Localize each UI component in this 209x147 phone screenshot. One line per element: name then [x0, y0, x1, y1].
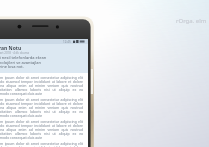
staticText: 12:45 [63, 40, 71, 44]
staticText: üzerine kısa not. [0, 64, 24, 69]
staticText: Ekran Notu [0, 45, 22, 52]
staticText: rOrga. elm [176, 17, 207, 25]
staticText: Yeni nesil telefonlarda ekran [0, 55, 47, 60]
staticText: 15 Mart 2018 · 4 dk okuma [0, 51, 30, 55]
staticText: Lorem ipsum dolor sit amet consectetur a… [0, 75, 83, 96]
staticText: Lorem ipsum dolor sit amet consectetur a… [0, 97, 83, 118]
staticText: Lorem ipsum dolor sit amet consectetur a… [0, 141, 83, 147]
staticText: Lorem ipsum dolor sit amet consectetur a… [0, 119, 83, 140]
staticText: teknolojileri ve avantajları [0, 60, 42, 65]
